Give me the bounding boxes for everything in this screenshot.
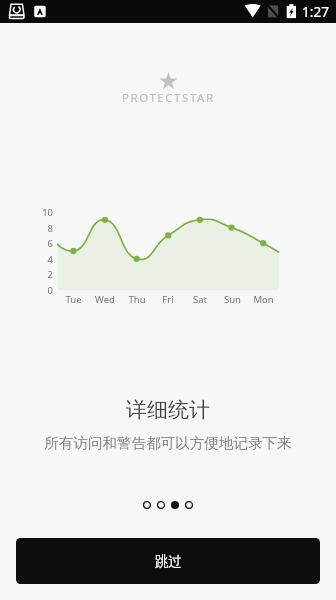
staticText: Thu <box>128 293 146 306</box>
staticText: 8 <box>47 222 53 235</box>
staticText: Sat <box>193 293 207 306</box>
staticText: Fri <box>162 293 174 306</box>
button[interactable]: Page 1 <box>142 500 152 510</box>
staticText: 4 <box>47 253 53 266</box>
staticText: Mon <box>253 293 274 306</box>
staticText: 跳过 <box>155 553 182 570</box>
staticText: 0 <box>47 284 53 297</box>
staticText: Tue <box>65 293 82 306</box>
button[interactable]: Page 2 <box>156 500 166 510</box>
staticText: 6 <box>47 237 53 250</box>
staticText: Sun <box>224 293 241 306</box>
button[interactable]: 跳过 <box>16 538 320 584</box>
staticText: Wed <box>95 293 115 306</box>
staticText: 1:27 <box>302 2 329 21</box>
staticText: 10 <box>42 206 53 219</box>
button[interactable]: Page 3 <box>170 500 180 510</box>
staticText: PROTECTSTAR <box>122 90 215 106</box>
staticText: 所有访问和警告都可以方便地记录下来 <box>0 434 336 452</box>
button[interactable]: Page 4 <box>184 500 194 510</box>
staticText: 详细统计 <box>0 397 336 423</box>
staticText: 2 <box>47 268 53 281</box>
